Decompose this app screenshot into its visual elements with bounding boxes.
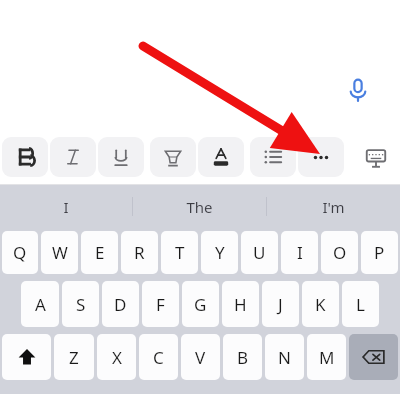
staticText: O: [333, 241, 347, 264]
staticText: W: [52, 241, 68, 264]
staticText: I'm: [322, 197, 345, 217]
staticText: K: [315, 293, 326, 316]
staticText: Z: [69, 346, 79, 369]
button[interactable]: Backspace: [349, 334, 398, 380]
button[interactable]: E: [81, 231, 118, 274]
button[interactable]: Y: [201, 231, 238, 274]
button[interactable]: Format option: [298, 137, 344, 177]
staticText: L: [356, 293, 365, 316]
staticText: F: [156, 293, 165, 316]
staticText: V: [195, 346, 206, 369]
button[interactable]: J: [262, 281, 299, 327]
button[interactable]: I: [281, 231, 318, 274]
button[interactable]: Z: [54, 334, 94, 380]
staticText: Y: [215, 241, 225, 264]
staticText: G: [194, 293, 207, 316]
staticText: C: [153, 346, 164, 369]
staticText: The: [186, 197, 213, 217]
button[interactable]: L: [342, 281, 379, 327]
button[interactable]: N: [265, 334, 304, 380]
button[interactable]: T: [161, 231, 198, 274]
staticText: B: [237, 346, 249, 369]
button[interactable]: R: [121, 231, 158, 274]
staticText: J: [278, 293, 283, 316]
staticText: M: [319, 346, 335, 369]
staticText: N: [278, 346, 291, 369]
button[interactable]: P: [361, 231, 398, 274]
button[interactable]: Voice input: [330, 62, 386, 118]
staticText: Q: [13, 241, 27, 264]
button[interactable]: B: [223, 334, 262, 380]
button[interactable]: F: [142, 281, 179, 327]
staticText: U: [253, 241, 266, 264]
staticText: S: [76, 293, 86, 316]
button[interactable]: Format option: [198, 137, 244, 177]
button[interactable]: Format option: [250, 137, 296, 177]
button[interactable]: W: [41, 231, 78, 274]
staticText: P: [374, 241, 385, 264]
button[interactable]: V: [181, 334, 220, 380]
button[interactable]: Change keyboard: [356, 138, 396, 178]
button[interactable]: X: [97, 334, 136, 380]
button[interactable]: Q: [2, 231, 38, 274]
staticText: H: [234, 293, 247, 316]
button[interactable]: K: [302, 281, 339, 327]
staticText: I: [63, 197, 69, 217]
button[interactable]: G: [182, 281, 219, 327]
staticText: E: [95, 241, 105, 264]
staticText: R: [134, 241, 145, 264]
staticText: D: [114, 293, 127, 316]
staticText: X: [112, 346, 122, 369]
button[interactable]: I: [0, 185, 132, 228]
button[interactable]: Format option: [2, 137, 48, 177]
button[interactable]: S: [62, 281, 99, 327]
button[interactable]: I'm: [267, 185, 400, 228]
button[interactable]: O: [321, 231, 358, 274]
button[interactable]: U: [241, 231, 278, 274]
button[interactable]: D: [102, 281, 139, 327]
button[interactable]: H: [222, 281, 259, 327]
button[interactable]: A: [21, 281, 59, 327]
staticText: T: [175, 241, 185, 264]
button[interactable]: The: [133, 185, 266, 228]
button[interactable]: Format option: [98, 137, 144, 177]
staticText: I: [297, 241, 303, 264]
button[interactable]: Format option: [50, 137, 96, 177]
button[interactable]: Format option: [150, 137, 196, 177]
button[interactable]: C: [139, 334, 178, 380]
staticText: A: [35, 293, 46, 316]
button[interactable]: M: [307, 334, 346, 380]
button[interactable]: Shift: [2, 334, 51, 380]
